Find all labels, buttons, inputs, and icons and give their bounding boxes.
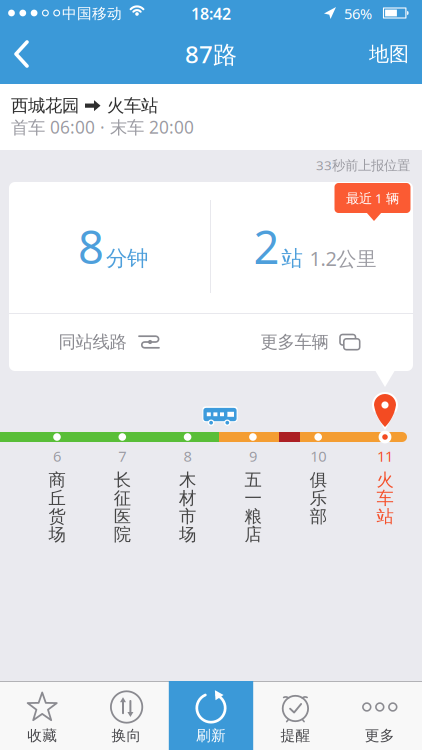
staticText: 商 [48,469,65,491]
staticText: 俱 [310,469,327,491]
staticText: 1.2公里 [304,245,376,272]
staticText: 木 [179,469,196,491]
staticText: 11 [377,446,393,466]
staticText: 中国移动 [62,4,122,22]
staticText: 9 [249,446,257,466]
staticText: 刷新 [196,726,226,744]
button[interactable]: 更多 [338,681,422,750]
staticText: 乐 [310,488,327,509]
staticText: 火车站 [107,95,158,116]
staticText: 货 [48,506,65,527]
staticText: 最近 1 辆 [346,189,399,207]
button[interactable]: 提醒 [253,681,338,750]
staticText: 五 [244,469,261,491]
staticText: 56% [344,4,372,23]
staticText: 站 [376,506,393,527]
staticText: 车 [376,488,393,509]
staticText: 收藏 [27,726,57,744]
staticText: 2 [253,216,279,277]
button[interactable]: 换向 [84,681,169,750]
staticText: 6 [53,446,61,466]
staticText: 市 [179,506,196,527]
staticText: 医 [114,506,131,527]
staticText: 首车 06:00 · 末车 20:00 [11,115,194,138]
staticText: 丘 [48,488,65,509]
staticText: 7 [118,446,126,466]
staticText: 8 [78,216,104,277]
staticText: 场 [179,524,196,545]
staticText: 场 [48,524,65,545]
button[interactable]: 地图 [358,32,420,76]
staticText: 18:42 [191,3,231,24]
staticText: 西城花园 [11,95,79,116]
button[interactable]: 返回 [7,35,37,73]
staticText: 提醒 [280,726,310,744]
staticText: 粮 [244,506,261,527]
staticText: 征 [114,488,131,509]
staticText: 更多车辆 [260,331,328,353]
staticText: 8 [184,446,192,466]
staticText: 87路 [185,38,237,70]
staticText: 店 [244,524,261,545]
staticText: 院 [114,524,131,545]
staticText: 火 [376,469,393,491]
staticText: 地图 [369,42,409,66]
button[interactable]: 同站线路 [9,313,210,370]
button[interactable]: 收藏 [0,681,84,750]
staticText: 10 [310,446,326,466]
staticText: 长 [114,469,131,491]
staticText: 更多 [365,726,395,744]
staticText: 站 [281,245,302,272]
staticText: 材 [179,488,196,509]
button[interactable]: 刷新 [169,681,253,750]
button[interactable]: 更多车辆 [210,313,411,370]
staticText: 33秒前上报位置 [316,156,410,174]
staticText: 分钟 [106,245,148,272]
staticText: 同站线路 [58,331,126,353]
staticText: 换向 [112,726,142,744]
staticText: 一 [244,488,261,509]
staticText: 部 [310,506,327,527]
